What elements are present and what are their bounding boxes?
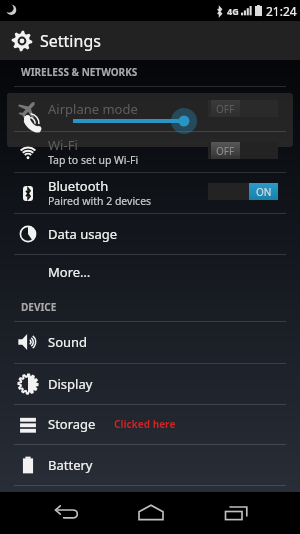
button[interactable]: Storage [0,404,300,444]
staticText: WIRELESS & NETWORKS [21,65,138,79]
button[interactable]: Settings [0,21,300,60]
button[interactable]: Bluetooth [0,172,300,213]
button[interactable]: Wi-Fi [0,131,300,172]
staticText: Bluetooth [48,177,109,195]
staticText: More… [48,263,91,281]
staticText: OFF [216,144,235,158]
staticText: Wi-Fi [48,136,78,154]
staticText: OFF [216,102,235,116]
staticText: Data usage [48,225,118,243]
button[interactable]: Sound [0,321,300,363]
button[interactable]: ON [208,183,278,200]
staticText: Airplane mode [48,100,138,118]
button[interactable]: Home [109,492,193,534]
button[interactable]: Back [24,492,108,534]
staticText: Display [48,375,93,393]
staticText: Clicked here [114,417,176,431]
staticText: Tap to set up Wi-Fi [48,153,139,167]
button[interactable]: More… [0,254,300,290]
button[interactable]: Battery [0,444,300,485]
button[interactable]: Data usage [0,213,300,254]
staticText: Settings [40,30,101,52]
staticText: 21:24 [266,3,297,19]
staticText: Storage [48,415,96,433]
staticText: DEVICE [21,300,57,314]
staticText: Paired with 2 devices [48,194,152,208]
staticText: Battery [48,456,93,474]
button[interactable]: OFF [208,100,278,117]
button[interactable]: Airplane mode [0,86,300,131]
button[interactable]: OFF [208,142,278,159]
staticText: Sound [48,333,88,351]
staticText: 4G [227,5,239,17]
button[interactable]: Display [0,363,300,404]
other: Call [23,112,44,133]
staticText: ON [256,185,272,199]
button[interactable]: Recent apps [194,492,278,534]
